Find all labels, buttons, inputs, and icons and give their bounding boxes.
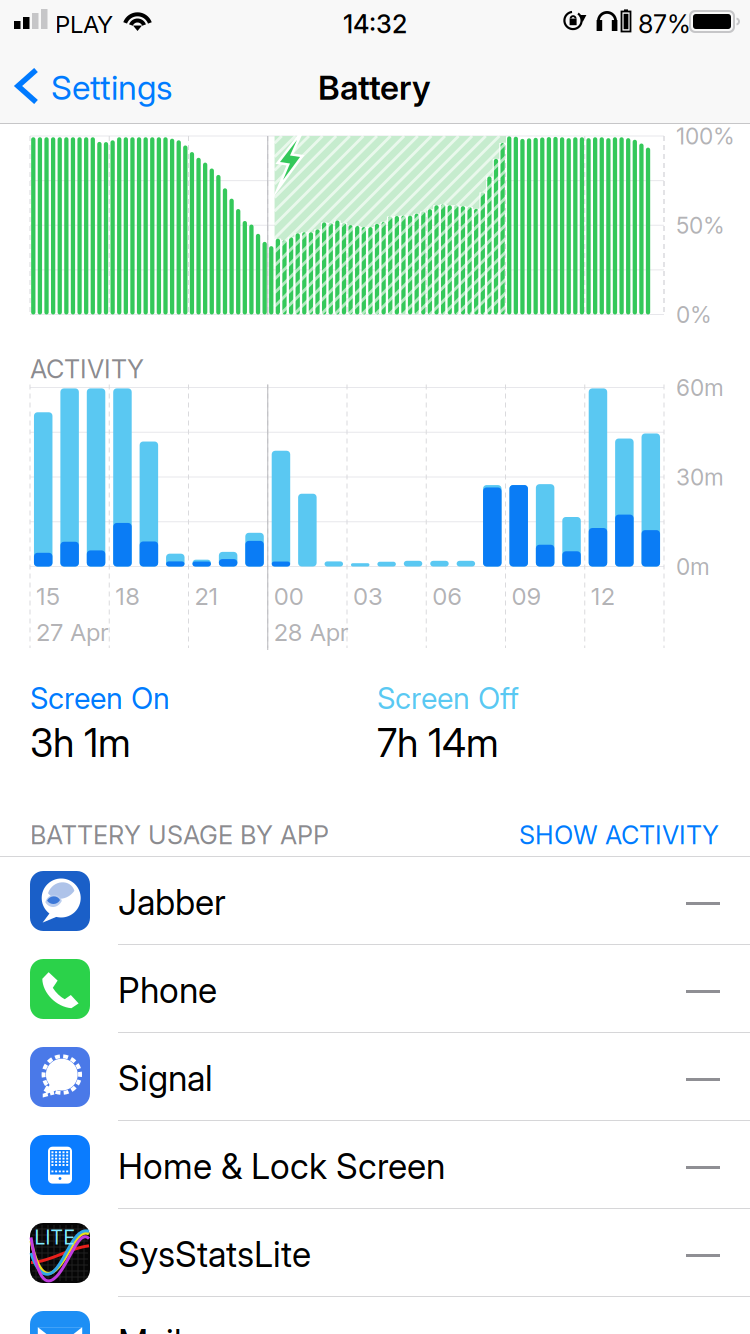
staticText: Jabber [118, 882, 226, 923]
button[interactable]: Jabber [0, 0, 750, 1334]
staticText: 09 [511, 582, 541, 610]
staticText: Screen Off [377, 681, 519, 716]
staticText: Screen On [30, 681, 170, 716]
staticText: Home & Lock Screen [118, 1146, 445, 1187]
staticText: 18 [115, 582, 140, 610]
button[interactable]: Signal [0, 0, 750, 1334]
staticText: 15 [36, 582, 60, 610]
button[interactable]: SHOW ACTIVITY [0, 0, 200, 30]
staticText: 3h 1m [30, 720, 131, 766]
staticText: 06 [432, 582, 462, 610]
staticText: 27 Apr [36, 618, 109, 646]
staticText: 12 [591, 582, 615, 610]
staticText: 21 [194, 582, 218, 610]
staticText: 03 [353, 582, 383, 610]
staticText: LITE [34, 1225, 75, 1249]
staticText: PLAY [55, 10, 113, 38]
staticText: 0m [676, 553, 710, 580]
button[interactable]: LITE [0, 0, 750, 1334]
button[interactable]: Settings [0, 48, 200, 124]
staticText: 28 Apr [274, 618, 349, 646]
staticText: 100% [676, 123, 735, 150]
staticText: 87% [638, 9, 691, 39]
staticText: 00 [274, 582, 304, 610]
staticText: SysStatsLite [118, 1234, 311, 1275]
button[interactable]: Phone [0, 0, 750, 1334]
staticText: 60m [676, 374, 724, 401]
staticText: Settings [51, 68, 173, 107]
staticText: ACTIVITY [30, 354, 144, 384]
staticText: 0% [676, 301, 712, 328]
staticText: 50% [676, 212, 725, 239]
staticText: 30m [676, 464, 724, 491]
staticText: Mail [118, 1322, 182, 1334]
staticText: Phone [118, 970, 217, 1011]
staticText: BATTERY USAGE BY APP [30, 820, 329, 850]
staticText: Signal [118, 1058, 213, 1099]
staticText: 7h 14m [377, 720, 499, 766]
button[interactable]: Mail [0, 0, 750, 1334]
staticText: Battery [318, 68, 431, 107]
staticText: 14:32 [343, 9, 407, 39]
staticText: SHOW ACTIVITY [519, 820, 719, 850]
button[interactable]: Home & Lock Screen [0, 0, 750, 1334]
